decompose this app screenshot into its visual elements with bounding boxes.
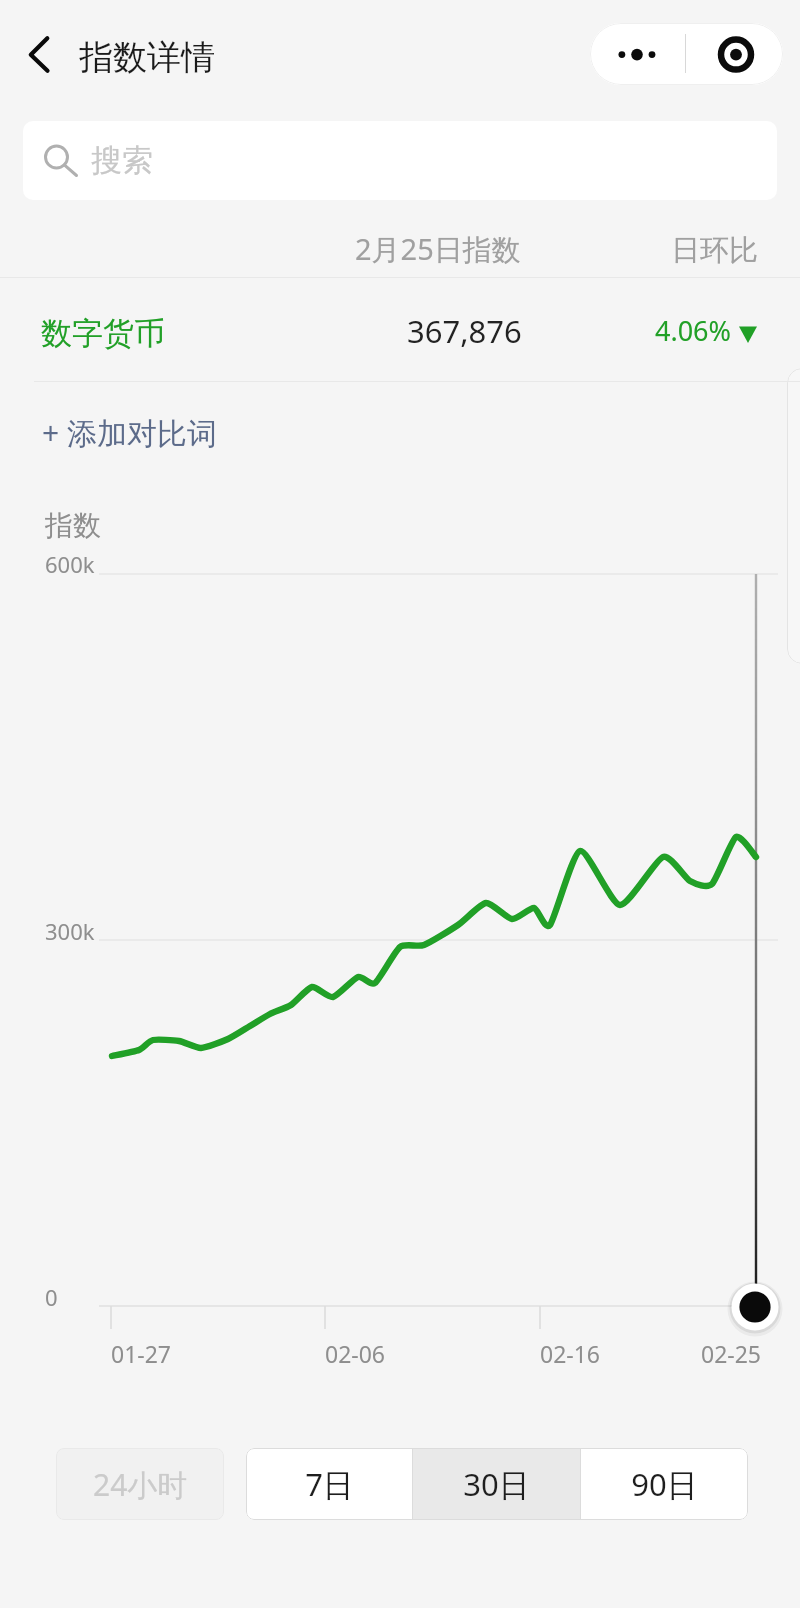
button[interactable]: 30日 bbox=[413, 1448, 580, 1520]
staticText: 90日 bbox=[631, 1463, 698, 1505]
staticText: 600k bbox=[45, 549, 95, 579]
staticText: 7日 bbox=[305, 1463, 354, 1505]
staticText: 24小时 bbox=[93, 1464, 188, 1505]
button[interactable]: + 添加对比词 bbox=[36, 406, 236, 458]
button[interactable]: More options bbox=[590, 23, 685, 85]
button[interactable] bbox=[0, 277, 800, 377]
staticText: 4.06% bbox=[655, 312, 732, 349]
staticText: 02-06 bbox=[325, 1338, 386, 1369]
staticText: 指数详情 bbox=[79, 36, 215, 79]
button[interactable]: Back bbox=[8, 22, 72, 88]
staticText: 指数 bbox=[45, 508, 101, 543]
staticText: 02-25 bbox=[701, 1338, 762, 1369]
staticText: 数字货币 bbox=[41, 314, 165, 353]
staticText: 2月25日指数 bbox=[355, 229, 521, 269]
staticText: 367,876 bbox=[407, 310, 522, 352]
staticText: 日环比 bbox=[671, 232, 758, 269]
staticText: 300k bbox=[45, 916, 95, 946]
staticText: 搜索 bbox=[91, 141, 153, 180]
button[interactable]: Close mini program bbox=[686, 23, 783, 85]
staticText: + 添加对比词 bbox=[42, 412, 217, 453]
staticText: 01-27 bbox=[111, 1338, 172, 1369]
button[interactable]: 24小时 bbox=[56, 1448, 224, 1520]
button[interactable]: 7日 bbox=[246, 1448, 412, 1520]
button[interactable]: 90日 bbox=[581, 1448, 748, 1520]
button[interactable]: 搜索 bbox=[23, 121, 777, 200]
staticText: 30日 bbox=[463, 1463, 530, 1505]
staticText: 0 bbox=[45, 1282, 58, 1312]
staticText: 02-16 bbox=[540, 1338, 601, 1369]
